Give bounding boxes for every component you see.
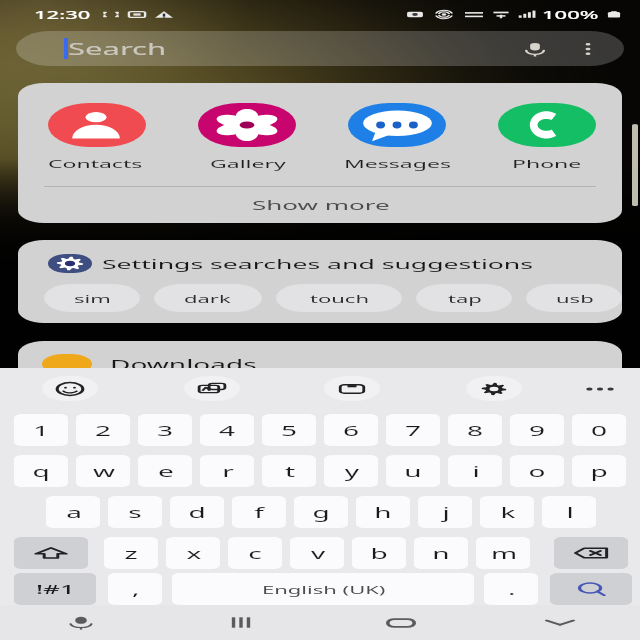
button[interactable]: v xyxy=(290,537,344,569)
button[interactable]: Downloads xyxy=(42,354,622,374)
staticText: p xyxy=(590,462,608,481)
staticText: j xyxy=(442,503,450,522)
button[interactable]: sim xyxy=(44,284,140,312)
button[interactable]: Home xyxy=(320,605,480,640)
button[interactable]: f xyxy=(232,496,286,528)
button[interactable]: Contacts xyxy=(20,103,172,172)
staticText: y xyxy=(344,462,360,481)
button[interactable]: Key xyxy=(554,537,628,569)
button[interactable]: a xyxy=(46,496,100,528)
staticText: English (UK) xyxy=(262,582,386,597)
button[interactable]: Key xyxy=(14,537,88,569)
staticText: 3 xyxy=(156,421,174,440)
button[interactable]: Keyboard settings xyxy=(466,376,522,401)
button[interactable]: h xyxy=(356,496,410,528)
button[interactable]: c xyxy=(228,537,282,569)
staticText: 9 xyxy=(528,421,546,440)
staticText: 8 xyxy=(466,421,484,440)
button[interactable]: More xyxy=(572,380,628,398)
button[interactable]: d xyxy=(170,496,224,528)
button[interactable]: k xyxy=(480,496,534,528)
button[interactable]: i xyxy=(448,455,502,487)
button[interactable]: u xyxy=(386,455,440,487)
button[interactable]: 1 xyxy=(14,414,68,446)
button[interactable]: e xyxy=(138,455,192,487)
button[interactable]: Search xyxy=(16,31,624,66)
button[interactable]: touch xyxy=(276,284,402,312)
button[interactable]: Voice search xyxy=(518,39,550,59)
button[interactable]: Gallery xyxy=(172,103,322,172)
button[interactable]: Recents xyxy=(160,605,320,640)
button[interactable]: More options xyxy=(572,38,604,60)
staticText: tap xyxy=(448,291,482,306)
staticText: dark xyxy=(184,291,232,306)
button[interactable]: 7 xyxy=(386,414,440,446)
button[interactable]: tap xyxy=(416,284,512,312)
button[interactable]: !#1 xyxy=(14,573,96,605)
button[interactable]: 9 xyxy=(510,414,564,446)
button[interactable]: , xyxy=(108,573,162,605)
staticText: f xyxy=(254,503,264,522)
button[interactable]: n xyxy=(414,537,468,569)
button[interactable]: r xyxy=(200,455,254,487)
button[interactable]: 4 xyxy=(200,414,254,446)
staticText: s xyxy=(128,503,142,522)
button[interactable]: 3 xyxy=(138,414,192,446)
button[interactable]: q xyxy=(14,455,68,487)
button[interactable]: Emoji xyxy=(42,376,98,401)
button[interactable]: z xyxy=(104,537,158,569)
staticText: !#1 xyxy=(36,580,76,598)
button[interactable]: Phone xyxy=(472,103,622,172)
button[interactable]: s xyxy=(108,496,162,528)
button[interactable]: p xyxy=(572,455,626,487)
button[interactable]: w xyxy=(76,455,130,487)
button[interactable]: 6 xyxy=(324,414,378,446)
button[interactable]: Voice input xyxy=(0,605,160,640)
button[interactable]: j xyxy=(418,496,472,528)
button[interactable]: 5 xyxy=(262,414,316,446)
staticText: l xyxy=(566,503,574,522)
staticText: Settings searches and suggestions xyxy=(102,255,534,273)
button[interactable]: y xyxy=(324,455,378,487)
staticText: Phone xyxy=(512,156,582,172)
button[interactable]: g xyxy=(294,496,348,528)
staticText: Show more xyxy=(252,196,390,214)
button[interactable]: . xyxy=(484,573,538,605)
button[interactable]: b xyxy=(352,537,406,569)
button[interactable]: Clipboard xyxy=(324,376,380,401)
button[interactable]: 0 xyxy=(572,414,626,446)
staticText: t xyxy=(284,462,296,481)
button[interactable]: Settings searches and suggestions xyxy=(48,254,622,273)
staticText: u xyxy=(404,462,422,481)
button[interactable]: usb xyxy=(526,284,622,312)
button[interactable]: 2 xyxy=(76,414,130,446)
button[interactable]: Show more xyxy=(18,187,622,223)
button[interactable]: Translate xyxy=(184,376,240,401)
staticText: c xyxy=(248,544,262,563)
staticText: Contacts xyxy=(48,156,144,172)
staticText: 6 xyxy=(342,421,360,440)
staticText: b xyxy=(370,544,388,563)
button[interactable]: Hide keyboard xyxy=(480,605,640,640)
button[interactable]: x xyxy=(166,537,220,569)
staticText: usb xyxy=(556,291,594,306)
button[interactable]: o xyxy=(510,455,564,487)
staticText: r xyxy=(222,462,234,481)
staticText: h xyxy=(374,503,392,522)
button[interactable]: t xyxy=(262,455,316,487)
button[interactable]: l xyxy=(542,496,596,528)
button[interactable]: dark xyxy=(154,284,262,312)
button[interactable]: Messages xyxy=(322,103,472,172)
staticText: q xyxy=(32,462,50,481)
staticText: 7 xyxy=(404,421,422,440)
button[interactable]: English (UK) xyxy=(172,573,474,605)
button[interactable]: 8 xyxy=(448,414,502,446)
staticText: a xyxy=(66,503,82,522)
staticText: i xyxy=(472,462,480,481)
staticText: 12:30 xyxy=(34,7,92,22)
staticText: sim xyxy=(74,291,112,306)
button[interactable]: m xyxy=(476,537,530,569)
button[interactable]: Search xyxy=(550,573,632,605)
staticText: 5 xyxy=(280,421,298,440)
staticText: 0 xyxy=(590,421,608,440)
